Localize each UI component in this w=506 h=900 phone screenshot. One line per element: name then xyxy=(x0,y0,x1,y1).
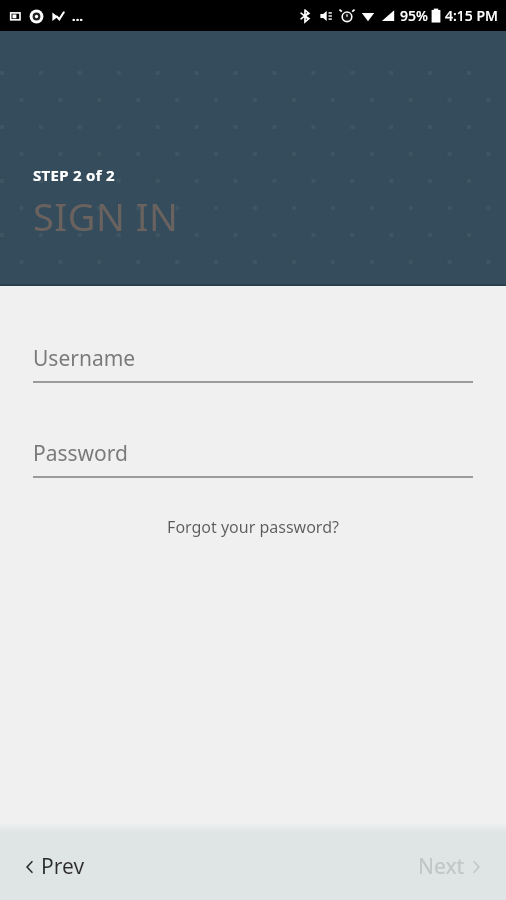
button[interactable]: Previous step xyxy=(0,838,105,895)
staticText: ... xyxy=(72,7,83,25)
staticText: 95% xyxy=(400,6,428,25)
staticText: SIGN IN xyxy=(33,190,179,242)
other: Previous step xyxy=(26,860,33,874)
button[interactable]: Password xyxy=(33,439,473,478)
staticText: Forgot your password? xyxy=(167,516,339,538)
staticText: Next xyxy=(418,852,465,881)
staticText: Username xyxy=(33,344,136,373)
button[interactable]: Username xyxy=(33,344,473,383)
staticText: 4:15 PM xyxy=(445,6,498,25)
button[interactable]: Next xyxy=(398,838,506,895)
staticText: Prev xyxy=(41,852,85,881)
button[interactable]: Forgot your password? xyxy=(155,510,351,544)
staticText: STEP 2 of 2 xyxy=(33,165,115,185)
staticText: Password xyxy=(33,439,128,468)
other: Next step xyxy=(473,860,480,874)
